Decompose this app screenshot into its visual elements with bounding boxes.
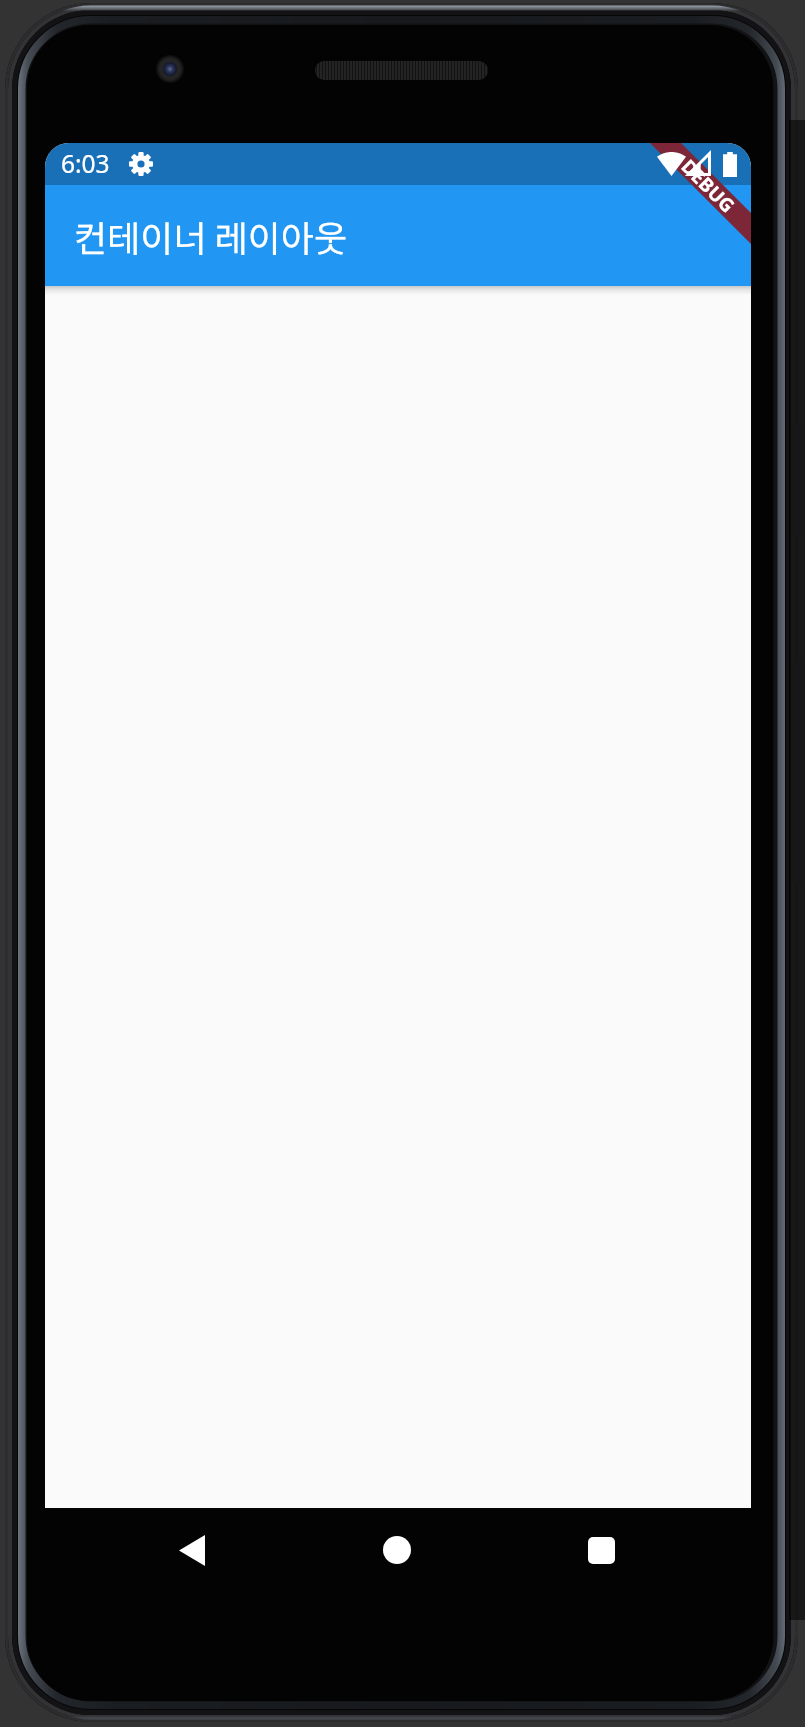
- staticText: DEBUG: [675, 153, 741, 219]
- staticText: 컨테이너 레이아웃: [74, 210, 348, 262]
- staticText: 6:03: [61, 147, 110, 180]
- button[interactable]: Recents: [546, 1500, 656, 1600]
- button[interactable]: Back: [137, 1500, 247, 1600]
- button[interactable]: Home: [342, 1500, 452, 1600]
